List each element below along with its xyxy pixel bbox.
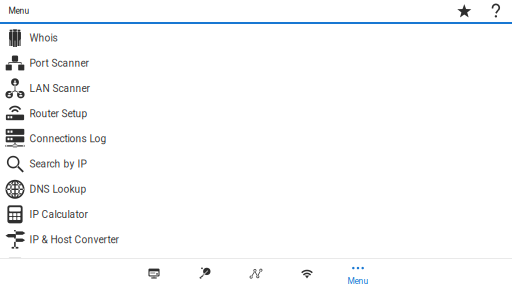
button[interactable]: Port Scanner bbox=[0, 51, 512, 76]
button[interactable]: IP Calculator bbox=[0, 202, 512, 227]
staticText: Router Setup bbox=[29, 108, 87, 120]
staticText: Menu bbox=[8, 6, 29, 16]
button[interactable]: Subnet Calculator bbox=[0, 252, 512, 277]
staticText: Port Scanner bbox=[29, 57, 88, 69]
button[interactable]: Traceroute bbox=[230, 259, 281, 288]
button[interactable]: LAN Scanner bbox=[0, 76, 512, 101]
staticText: Whois bbox=[29, 32, 57, 44]
staticText: DNS Lookup bbox=[29, 183, 86, 195]
staticText: Menu bbox=[347, 276, 368, 286]
staticText: IP & Host Converter bbox=[29, 234, 118, 246]
button[interactable]: Connections Log bbox=[0, 126, 512, 151]
button[interactable]: Router Setup bbox=[0, 101, 512, 126]
button[interactable]: IP & Host Converter bbox=[0, 227, 512, 252]
button[interactable]: Help bbox=[480, 0, 511, 22]
staticText: Connections Log bbox=[29, 133, 106, 145]
button[interactable]: Favorites bbox=[448, 0, 480, 22]
button[interactable]: Wi-Fi bbox=[281, 259, 332, 288]
button[interactable]: Ping bbox=[179, 259, 230, 288]
button[interactable]: Info bbox=[128, 259, 179, 288]
button[interactable]: Search by IP bbox=[0, 151, 512, 177]
button[interactable]: Whois bbox=[0, 25, 512, 51]
staticText: IP Calculator bbox=[29, 209, 87, 220]
staticText: Search by IP bbox=[29, 158, 86, 170]
button[interactable]: DNS Lookup bbox=[0, 177, 512, 202]
staticText: LAN Scanner bbox=[29, 83, 89, 94]
button[interactable]: Port Reference bbox=[0, 277, 512, 288]
button[interactable]: Menu bbox=[332, 259, 383, 288]
